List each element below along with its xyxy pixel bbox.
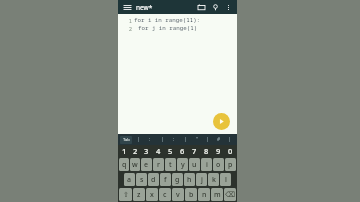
staticText: ⇧ (123, 191, 129, 199)
staticText: ⌫ (225, 191, 235, 199)
staticText: p (228, 160, 233, 170)
staticText: h (187, 175, 192, 185)
staticText: Tab (123, 137, 130, 143)
button[interactable]: | (202, 135, 213, 144)
button[interactable]: h (184, 173, 195, 186)
staticText: z (137, 190, 141, 200)
button[interactable]: 9 (212, 145, 224, 157)
staticText: 0 (228, 146, 233, 156)
button[interactable]: v (172, 188, 184, 201)
staticText: new* (136, 3, 153, 12)
button[interactable]: 2 (118, 24, 237, 32)
staticText: 2 (128, 25, 132, 32)
staticText: i (206, 160, 208, 170)
staticText: c (163, 190, 167, 200)
button[interactable]: 0 (224, 145, 236, 157)
staticText: g (175, 175, 180, 185)
button[interactable]: i (201, 158, 212, 171)
button[interactable]: 7 (188, 145, 200, 157)
staticText: # (217, 136, 221, 143)
button[interactable]: a (124, 173, 135, 186)
button[interactable]: | (180, 135, 191, 144)
button[interactable]: " (191, 135, 202, 144)
button[interactable]: l (220, 173, 231, 186)
staticText: : (173, 136, 175, 143)
button[interactable]: 6 (176, 145, 188, 157)
button[interactable]: c (159, 188, 171, 201)
button[interactable]: y (177, 158, 188, 171)
staticText: : (149, 136, 151, 143)
button[interactable]: 1 (119, 145, 130, 157)
staticText: 2 (133, 146, 138, 156)
staticText: y (181, 160, 185, 170)
button[interactable]: x (146, 188, 158, 201)
button[interactable]: g (172, 173, 183, 186)
staticText: 3 (144, 146, 149, 156)
staticText: s (140, 175, 144, 185)
button[interactable]: p (225, 158, 236, 171)
button[interactable]: 4 (152, 145, 164, 157)
staticText: t (169, 160, 172, 170)
button[interactable]: | (132, 135, 144, 144)
button[interactable]: More options (222, 1, 234, 13)
button[interactable]: w (130, 158, 140, 171)
staticText: | (137, 136, 140, 143)
staticText: 4 (156, 146, 161, 156)
staticText: 8 (204, 146, 209, 156)
staticText: | (161, 136, 164, 143)
button[interactable]: t (165, 158, 176, 171)
staticText: n (202, 190, 207, 200)
staticText: 5 (168, 146, 173, 156)
button[interactable]: 2 (130, 145, 141, 157)
button[interactable]: Suggestions (209, 1, 221, 13)
staticText: | (228, 136, 231, 143)
staticText: 7 (192, 146, 197, 156)
button[interactable]: m (211, 188, 223, 201)
button[interactable]: # (213, 135, 224, 144)
button[interactable]: 5 (164, 145, 176, 157)
staticText: a (127, 175, 132, 185)
staticText: d (151, 175, 156, 185)
staticText: o (216, 160, 221, 170)
staticText: f (164, 175, 167, 185)
button[interactable]: 3 (141, 145, 152, 157)
staticText: | (206, 136, 209, 143)
button[interactable]: j (196, 173, 207, 186)
staticText: r (157, 160, 160, 170)
button[interactable]: s (136, 173, 147, 186)
button[interactable]: k (208, 173, 219, 186)
staticText: x (150, 190, 154, 200)
staticText: u (192, 160, 197, 170)
button[interactable]: o (213, 158, 224, 171)
button[interactable]: Run code (213, 113, 230, 130)
staticText: v (176, 190, 180, 200)
button[interactable]: 1 (118, 16, 237, 24)
button[interactable]: Save file (195, 1, 207, 13)
button[interactable]: u (189, 158, 200, 171)
button[interactable]: e (141, 158, 152, 171)
button[interactable]: : (144, 135, 156, 144)
button[interactable]: r (153, 158, 164, 171)
button[interactable]: n (198, 188, 210, 201)
button[interactable]: 8 (200, 145, 212, 157)
button[interactable]: Open navigation menu (121, 1, 133, 13)
staticText: m (214, 190, 221, 200)
button[interactable]: | (156, 135, 168, 144)
button[interactable]: ⇧ (119, 188, 132, 201)
button[interactable]: f (160, 173, 171, 186)
staticText: l (225, 175, 227, 185)
button[interactable]: d (148, 173, 159, 186)
button[interactable]: z (133, 188, 145, 201)
staticText: 1 (128, 17, 132, 24)
staticText: 9 (216, 146, 221, 156)
button[interactable]: | (224, 135, 235, 144)
staticText: e (144, 160, 149, 170)
staticText: 6 (180, 146, 185, 156)
staticText: q (122, 160, 127, 170)
button[interactable]: q (119, 158, 129, 171)
staticText: for i in range(11): (134, 16, 201, 24)
button[interactable]: : (168, 135, 180, 144)
button[interactable]: b (185, 188, 197, 201)
button[interactable]: ⌫ (224, 188, 236, 201)
button[interactable]: Tab (120, 136, 132, 144)
